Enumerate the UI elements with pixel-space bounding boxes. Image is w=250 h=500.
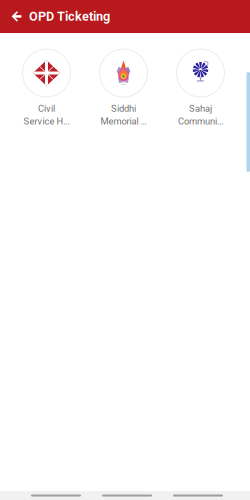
button[interactable]: Sahaj xyxy=(162,49,239,127)
button[interactable]: Civil xyxy=(8,49,85,127)
staticText: OPD Ticketing xyxy=(29,9,110,24)
staticText: Sahaj xyxy=(189,103,212,114)
button[interactable]: Siddhi xyxy=(85,49,162,127)
button[interactable]: Back xyxy=(5,0,29,33)
staticText: Siddhi xyxy=(111,103,136,114)
staticText: Service H... xyxy=(23,116,69,127)
staticText: Memorial ... xyxy=(100,116,146,127)
staticText: Communi... xyxy=(178,116,223,127)
staticText: Civil xyxy=(38,103,55,114)
